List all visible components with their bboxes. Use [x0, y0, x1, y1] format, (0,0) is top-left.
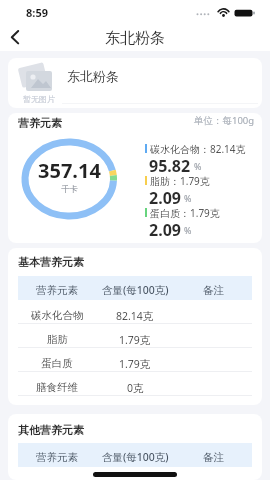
staticText: 营养元素: [18, 116, 62, 130]
staticText: 膳食纤维: [36, 381, 78, 394]
staticText: 蛋白质：1.79克: [150, 206, 220, 219]
staticText: 82.14克: [116, 309, 154, 323]
staticText: %: [194, 160, 202, 172]
staticText: 营养元素: [36, 451, 78, 464]
staticText: 1.79克: [119, 333, 151, 347]
staticText: 脂肪：1.79克: [150, 174, 210, 187]
staticText: 脂肪: [47, 333, 68, 346]
button[interactable]: [6, 26, 30, 50]
staticText: 营养元素: [36, 284, 78, 297]
staticText: 单位：每100g: [194, 114, 255, 127]
staticText: 东北粉条: [105, 29, 165, 48]
staticText: 2.09: [149, 219, 181, 238]
button[interactable]: 暂无图片: [8, 58, 262, 108]
staticText: 含量(每100克): [102, 283, 169, 297]
staticText: 含量(每100克): [102, 450, 169, 464]
staticText: 蛋白质: [41, 357, 73, 370]
staticText: 碳水化合物: [31, 309, 84, 322]
staticText: 0克: [127, 381, 144, 395]
staticText: 2.09: [149, 187, 181, 206]
staticText: 备注: [203, 451, 224, 464]
staticText: 357.14: [38, 157, 101, 184]
staticText: 其他营养元素: [18, 423, 84, 437]
staticText: %: [184, 192, 192, 204]
staticText: 暂无图片: [23, 94, 55, 104]
staticText: 备注: [203, 284, 224, 297]
staticText: %: [184, 224, 192, 236]
staticText: 8:59: [26, 5, 48, 20]
staticText: 95.82: [149, 155, 191, 174]
staticText: 碳水化合物：82.14克: [150, 142, 246, 155]
staticText: 千卡: [61, 184, 78, 195]
staticText: 东北粉条: [67, 68, 119, 84]
staticText: 基本营养元素: [18, 255, 84, 269]
staticText: 1.79克: [119, 357, 151, 371]
